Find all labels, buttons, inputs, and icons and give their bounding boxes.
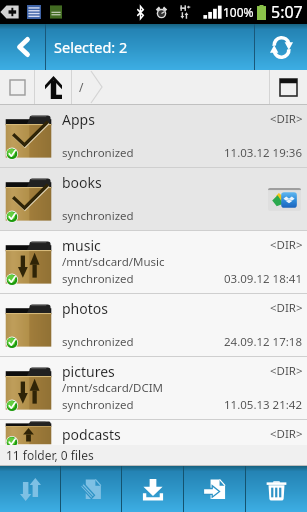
staticText: / bbox=[79, 79, 84, 95]
button[interactable]: Select all bbox=[0, 70, 34, 104]
button[interactable]: Up one level bbox=[35, 70, 71, 104]
staticText: <DIR> bbox=[270, 300, 303, 316]
button[interactable]: pictures bbox=[0, 357, 307, 419]
staticText: /mnt/sdcard/DCIM bbox=[62, 380, 163, 396]
staticText: synchronized bbox=[62, 208, 134, 224]
button[interactable]: Back bbox=[0, 24, 45, 70]
staticText: <DIR> bbox=[270, 426, 303, 442]
button[interactable]: Selected: 2 bbox=[46, 24, 254, 70]
button[interactable]: Rename bbox=[61, 466, 121, 512]
button[interactable]: photos bbox=[0, 294, 307, 356]
button[interactable]: Sort bbox=[0, 466, 60, 512]
staticText: synchronized bbox=[62, 334, 134, 350]
staticText: podcasts bbox=[62, 425, 121, 444]
staticText: <DIR> bbox=[270, 237, 303, 253]
button[interactable]: podcasts bbox=[0, 420, 307, 445]
staticText: 100% bbox=[223, 4, 254, 20]
staticText: 03.09.12 18:41 bbox=[224, 271, 303, 287]
button[interactable]: Cloud accounts bbox=[268, 188, 301, 211]
staticText: 24.09.12 17:18 bbox=[224, 334, 303, 350]
staticText: 5:07 bbox=[271, 1, 303, 23]
staticText: Selected: 2 bbox=[54, 37, 128, 57]
staticText: <DIR> bbox=[270, 111, 303, 127]
staticText: /mnt/sdcard/Music bbox=[62, 254, 165, 270]
staticText: <DIR> bbox=[270, 363, 303, 379]
staticText: 11.03.12 19:36 bbox=[224, 145, 303, 161]
button[interactable]: Move bbox=[184, 466, 245, 512]
staticText: pictures bbox=[62, 362, 115, 381]
button[interactable]: Download bbox=[122, 466, 183, 512]
staticText: synchronized bbox=[62, 271, 134, 287]
staticText: 11.05.13 21:42 bbox=[224, 397, 303, 413]
staticText: synchronized bbox=[62, 397, 134, 413]
staticText: photos bbox=[62, 299, 108, 318]
button[interactable]: Refresh bbox=[255, 24, 307, 70]
staticText: 11 folder, 0 files bbox=[6, 447, 94, 463]
button[interactable]: books bbox=[0, 168, 307, 230]
button[interactable]: / bbox=[72, 70, 269, 104]
staticText: Apps bbox=[62, 110, 95, 129]
staticText: books bbox=[62, 173, 102, 192]
button[interactable]: View mode bbox=[270, 70, 307, 104]
button[interactable]: music bbox=[0, 231, 307, 293]
staticText: synchronized bbox=[62, 145, 134, 161]
button[interactable]: Apps bbox=[0, 105, 307, 167]
button[interactable]: Delete bbox=[246, 466, 307, 512]
staticText: music bbox=[62, 236, 101, 255]
